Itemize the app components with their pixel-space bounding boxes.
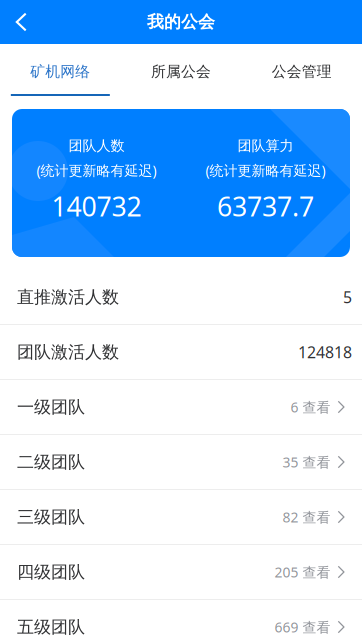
button[interactable]: 二级团队 [0, 435, 362, 490]
button[interactable]: 团队激活人数 [0, 325, 362, 380]
button[interactable]: 一级团队 [0, 380, 362, 435]
staticText: 140732 [51, 188, 141, 224]
staticText: 团队激活人数 [17, 341, 119, 363]
staticText: 82 查看 [282, 508, 330, 526]
staticText: (统计更新略有延迟) [36, 161, 156, 180]
staticText: 二级团队 [17, 451, 85, 473]
staticText: 124818 [298, 341, 352, 363]
button[interactable]: 四级团队 [0, 545, 362, 600]
staticText: 一级团队 [17, 396, 85, 418]
staticText: 四级团队 [17, 561, 85, 583]
button[interactable]: 公会管理 [241, 44, 362, 96]
staticText: 所属公会 [151, 62, 211, 81]
staticText: 205 查看 [274, 563, 330, 581]
staticText: 矿机网络 [30, 62, 90, 81]
button[interactable]: 直推激活人数 [0, 270, 362, 325]
staticText: 5 [343, 286, 352, 308]
button[interactable]: 矿机网络 [0, 44, 121, 96]
button[interactable]: 五级团队 [0, 600, 362, 642]
staticText: 公会管理 [272, 62, 332, 81]
staticText: 我的公会 [147, 11, 215, 33]
staticText: (统计更新略有延迟) [205, 161, 325, 180]
staticText: 6 查看 [290, 398, 330, 416]
button[interactable]: 所属公会 [121, 44, 241, 96]
staticText: 三级团队 [17, 506, 85, 528]
staticText: 团队算力 [237, 137, 293, 155]
staticText: 直推激活人数 [17, 286, 119, 308]
button[interactable]: Back [0, 0, 40, 44]
button[interactable]: 三级团队 [0, 490, 362, 545]
staticText: 669 查看 [274, 618, 330, 636]
staticText: 团队人数 [68, 137, 124, 155]
staticText: 63737.7 [217, 188, 314, 224]
staticText: 五级团队 [17, 616, 85, 638]
staticText: 35 查看 [282, 453, 330, 471]
